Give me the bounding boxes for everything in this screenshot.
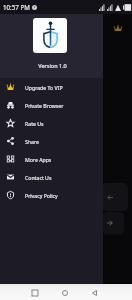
staticText: Version 1.0 (1, 62, 104, 69)
staticText: Share (25, 138, 39, 145)
button[interactable]: Share (0, 132, 103, 150)
staticText: Rate Us (25, 120, 44, 127)
staticText: Upgrade To VIP (25, 84, 63, 91)
button[interactable]: Forward (102, 212, 124, 234)
staticText: Private Browser (25, 102, 64, 109)
staticText: Contact Us (25, 174, 52, 181)
button[interactable]: Back (102, 183, 128, 211)
staticText: More Apps (25, 156, 52, 163)
button[interactable]: Rate Us (0, 114, 103, 132)
button[interactable]: Back (86, 284, 103, 300)
button[interactable]: Privacy Policy (0, 186, 103, 204)
staticText: Privacy Policy (25, 192, 58, 199)
button[interactable]: More Apps (0, 150, 103, 168)
staticText: 10:57 PM (3, 3, 30, 11)
button[interactable]: Private Browser (0, 96, 103, 114)
button[interactable]: Upgrade To VIP (0, 78, 103, 96)
button[interactable]: Home (56, 284, 73, 300)
button[interactable]: Upgrade to VIP (110, 21, 125, 36)
button[interactable]: Recent apps (26, 284, 43, 300)
button[interactable]: Contact Us (0, 168, 103, 186)
